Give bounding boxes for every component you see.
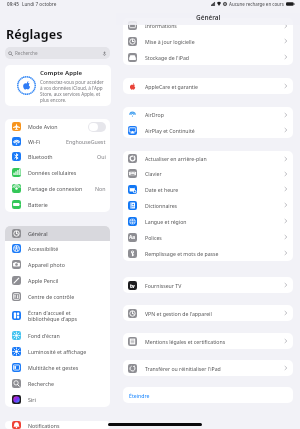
button[interactable]: Centre de contrôle (5, 288, 110, 304)
staticText: Accessibilité (28, 245, 59, 252)
staticText: Appareil photo (28, 261, 65, 268)
staticText: Aucune recharge en cours (229, 1, 284, 7)
button[interactable]: Appareil photo (5, 256, 110, 272)
staticText: Réglages (6, 26, 63, 43)
button[interactable]: Écran d'accueil et bibliothèque d'apps (5, 304, 110, 327)
staticText: Recherche (28, 380, 54, 387)
button[interactable]: Remplissage et mots de passe (123, 245, 293, 261)
button[interactable]: Transférer ou réinitialiser l'iPad (123, 360, 293, 376)
button[interactable]: Recherche (5, 375, 110, 391)
button[interactable]: Clavier (123, 166, 293, 181)
staticText: Informations (145, 22, 284, 29)
staticText: Mise à jour logicielle (145, 38, 284, 45)
button[interactable]: tv (123, 277, 293, 293)
button[interactable]: Informations (123, 18, 293, 33)
staticText: Stockage de l'iPad (145, 54, 284, 61)
staticText: Clavier (145, 170, 284, 177)
button[interactable]: Notifications (5, 421, 110, 429)
staticText: Siri (28, 396, 36, 403)
button[interactable]: Partage de connexion (5, 180, 110, 196)
button[interactable]: Éteindre (123, 387, 293, 403)
staticText: Recherche (15, 50, 38, 56)
button[interactable]: Aa (123, 229, 293, 245)
button[interactable]: Wi-Fi (5, 134, 110, 149)
staticText: Mentions légales et certifications (145, 338, 284, 345)
button[interactable]: Multitâche et gestes (5, 359, 110, 375)
button[interactable]: AppleCare et garantie (123, 78, 293, 94)
staticText: AirPlay et Continuité (145, 127, 284, 134)
button[interactable]: Compte Apple (5, 65, 111, 106)
staticText: Général (28, 230, 48, 237)
staticText: Compte Apple (40, 69, 83, 77)
staticText: Fournisseur TV (145, 282, 284, 289)
staticText: AirDrop (145, 111, 284, 118)
button[interactable]: AirDrop (123, 107, 293, 122)
button[interactable]: Bluetooth (5, 149, 110, 164)
staticText: Wi-Fi (28, 138, 41, 145)
staticText: EnghouseGuest (66, 138, 106, 145)
staticText: Multitâche et gestes (28, 364, 79, 371)
button[interactable]: Dictionnaires (123, 197, 293, 213)
button[interactable]: Actualiser en arrière-plan (123, 151, 293, 166)
staticText: Centre de contrôle (28, 293, 75, 300)
button[interactable]: Accessibilité (5, 241, 110, 256)
staticText: Éteindre (129, 392, 150, 399)
staticText: Date et heure (145, 186, 284, 193)
staticText: AppleCare et garantie (145, 83, 284, 90)
staticText: Partage de connexion (28, 185, 83, 192)
staticText: Dictionnaires (145, 202, 284, 209)
staticText: Écran d'accueil et bibliothèque d'apps (28, 309, 78, 323)
button[interactable]: Luminosité et affichage (5, 343, 110, 359)
button[interactable]: Fond d'écran (5, 327, 110, 343)
staticText: Polices (145, 234, 284, 241)
staticText: Fond d'écran (28, 332, 60, 339)
button[interactable]: Données cellulaires (5, 164, 110, 180)
button[interactable]: Siri (5, 391, 110, 407)
staticText: 09:45 (7, 1, 19, 7)
staticText: Transférer ou réinitialiser l'iPad (145, 365, 284, 372)
staticText: Remplissage et mots de passe (145, 250, 284, 257)
button[interactable]: Mode Avion (5, 119, 110, 134)
button[interactable]: Général (5, 226, 110, 241)
staticText: Non (95, 185, 106, 192)
button[interactable]: Batterie (5, 196, 110, 212)
button[interactable]: Mise à jour logicielle (123, 33, 293, 49)
button[interactable]: VPN et gestion de l'appareil (123, 305, 293, 321)
staticText: Apple Pencil (28, 277, 59, 284)
staticText: Batterie (28, 201, 48, 208)
staticText: VPN et gestion de l'appareil (145, 310, 284, 317)
staticText: Mode Avion (28, 123, 58, 130)
staticText: Bluetooth (28, 153, 53, 160)
staticText: Luminosité et affichage (28, 348, 87, 355)
button[interactable]: AirPlay et Continuité (123, 122, 293, 138)
button[interactable]: Langue et région (123, 213, 293, 229)
staticText: Oui (97, 153, 106, 160)
button[interactable]: Date et heure (123, 181, 293, 197)
staticText: Actualiser en arrière-plan (145, 155, 284, 162)
staticText: Aa (129, 234, 136, 241)
staticText: Données cellulaires (28, 169, 77, 176)
staticText: Connectez-vous pour accéder à vos donnée… (40, 79, 105, 103)
staticText: tv (130, 283, 135, 289)
button[interactable]: Stockage de l'iPad (123, 49, 293, 65)
button[interactable]: Apple Pencil (5, 272, 110, 288)
button[interactable]: Mentions légales et certifications (123, 333, 293, 349)
staticText: Langue et région (145, 218, 284, 225)
staticText: Lundi 7 octobre (22, 1, 57, 7)
staticText: Général (196, 13, 221, 20)
button[interactable]: Recherche (5, 47, 110, 59)
staticText: Notifications (28, 422, 60, 429)
